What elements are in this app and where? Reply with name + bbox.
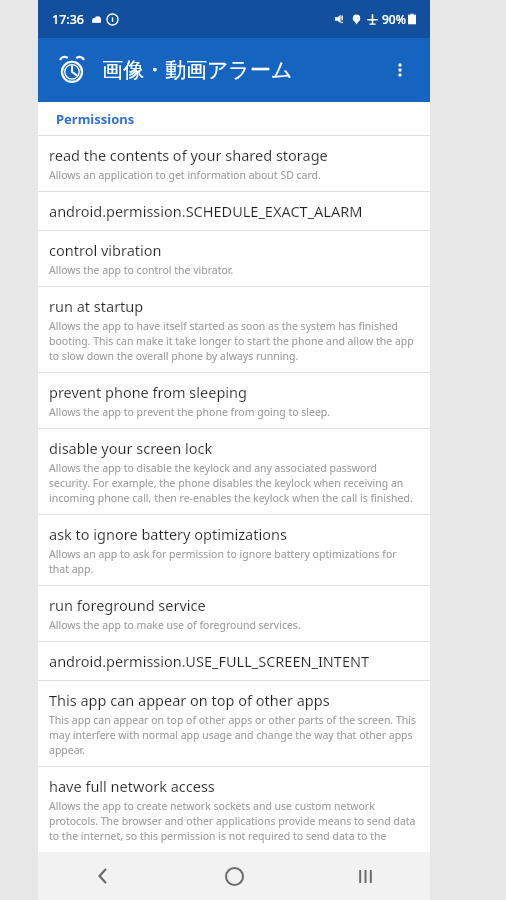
- button[interactable]: run at startup: [38, 287, 430, 372]
- button[interactable]: Home: [210, 852, 258, 900]
- staticText: Allows the app to control the vibrator.: [49, 263, 234, 277]
- staticText: prevent phone from sleeping: [49, 382, 247, 402]
- staticText: This app can appear on top of other apps…: [49, 713, 419, 757]
- button[interactable]: control vibration: [38, 231, 430, 286]
- staticText: Permissions: [56, 110, 135, 128]
- staticText: Allows an application to get information…: [49, 168, 321, 182]
- staticText: 画像・動画アラーム: [102, 57, 293, 83]
- button[interactable]: android.permission.USE_FULL_SCREEN_INTEN…: [38, 642, 430, 680]
- staticText: This app can appear on top of other apps: [49, 690, 330, 710]
- staticText: read the contents of your shared storage: [49, 145, 328, 165]
- staticText: control vibration: [49, 240, 162, 260]
- staticText: Allows the app to disable the keylock an…: [49, 461, 419, 505]
- button[interactable]: read the contents of your shared storage: [38, 136, 430, 191]
- button[interactable]: Alarm: [52, 50, 92, 90]
- staticText: android.permission.USE_FULL_SCREEN_INTEN…: [49, 651, 370, 671]
- staticText: Allows the app to create network sockets…: [49, 799, 419, 843]
- staticText: Allows the app to make use of foreground…: [49, 618, 301, 632]
- button[interactable]: have full network access: [38, 767, 430, 852]
- button[interactable]: This app can appear on top of other apps: [38, 681, 430, 766]
- staticText: 90%: [382, 11, 406, 27]
- button[interactable]: Recent apps: [341, 852, 389, 900]
- staticText: Allows an app to ask for permission to i…: [49, 547, 419, 576]
- button[interactable]: run foreground service: [38, 586, 430, 641]
- staticText: ask to ignore battery optimizations: [49, 524, 287, 544]
- staticText: have full network access: [49, 776, 215, 796]
- button[interactable]: Back: [79, 852, 127, 900]
- staticText: run foreground service: [49, 595, 206, 615]
- button[interactable]: android.permission.SCHEDULE_EXACT_ALARM: [38, 192, 430, 230]
- button[interactable]: More options: [380, 50, 420, 90]
- button[interactable]: ask to ignore battery optimizations: [38, 515, 430, 585]
- staticText: run at startup: [49, 296, 144, 316]
- staticText: Allows the app to prevent the phone from…: [49, 405, 331, 419]
- staticText: android.permission.SCHEDULE_EXACT_ALARM: [49, 201, 363, 221]
- button[interactable]: prevent phone from sleeping: [38, 373, 430, 428]
- button[interactable]: disable your screen lock: [38, 429, 430, 514]
- staticText: Allows the app to have itself started as…: [49, 319, 419, 363]
- staticText: disable your screen lock: [49, 438, 213, 458]
- staticText: 17:36: [52, 11, 85, 28]
